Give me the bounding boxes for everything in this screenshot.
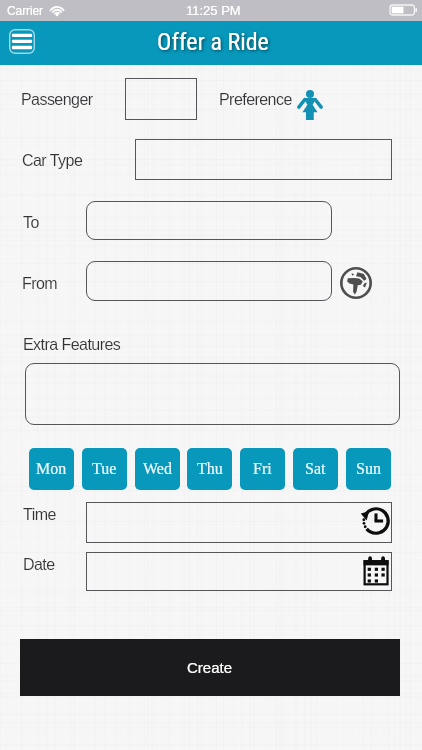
staticText: Fri	[253, 460, 272, 478]
staticText: Time	[23, 506, 56, 524]
button[interactable]: Create	[20, 639, 400, 696]
button[interactable]	[86, 502, 392, 543]
button[interactable]: Pick time	[362, 507, 390, 535]
staticText: Thu	[197, 460, 223, 478]
staticText: To	[23, 214, 39, 232]
staticText: Create	[187, 659, 233, 676]
button[interactable]: Menu	[9, 29, 35, 54]
staticText: Carrier	[7, 4, 43, 17]
button[interactable]: Pick on map	[340, 267, 372, 299]
button[interactable]: Fri	[240, 448, 285, 490]
staticText: Date	[23, 556, 55, 574]
button[interactable]: Sun	[346, 448, 391, 490]
button[interactable]: Thu	[187, 448, 232, 490]
button[interactable]: Sat	[293, 448, 338, 490]
staticText: 11:25 PM	[186, 3, 241, 18]
button[interactable]	[86, 201, 332, 240]
staticText: Sat	[305, 460, 326, 478]
staticText: Preference	[219, 91, 292, 109]
button[interactable]	[86, 552, 392, 591]
staticText: Tue	[92, 460, 117, 478]
staticText: From	[22, 275, 58, 293]
button[interactable]: Pick date	[363, 556, 389, 586]
button[interactable]: Wed	[135, 448, 180, 490]
staticText: Wed	[143, 460, 172, 478]
button[interactable]: Tue	[82, 448, 127, 490]
button[interactable]: Preference: female	[297, 88, 323, 120]
staticText: Sun	[356, 460, 381, 478]
button[interactable]	[25, 363, 400, 425]
button[interactable]	[125, 78, 197, 120]
staticText: Passenger	[21, 91, 93, 109]
staticText: Car Type	[22, 152, 83, 170]
button[interactable]	[135, 139, 392, 180]
staticText: Extra Features	[23, 336, 121, 354]
staticText: Offer a Ride	[157, 28, 269, 56]
staticText: Mon	[36, 460, 67, 478]
button[interactable]	[86, 261, 332, 301]
button[interactable]: Mon	[29, 448, 74, 490]
